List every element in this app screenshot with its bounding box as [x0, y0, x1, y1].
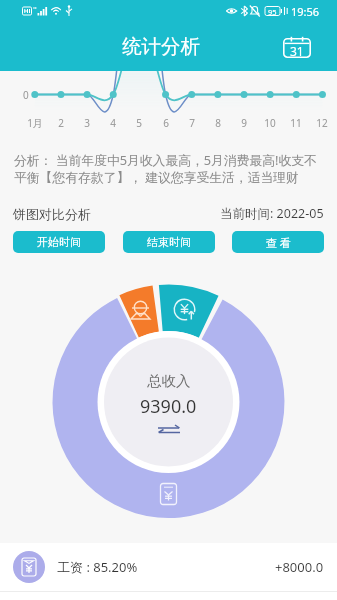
staticText: 12 — [310, 116, 334, 130]
staticText: 开始时间 — [37, 235, 81, 249]
staticText: 结束时间 — [147, 235, 191, 249]
staticText: 总收入 — [147, 372, 191, 390]
staticText: +8000.0 — [275, 558, 324, 576]
staticText: 95 — [268, 7, 277, 17]
button[interactable]: 结束时间 — [123, 231, 215, 253]
staticText: 5 — [127, 116, 151, 130]
staticText: 31 — [290, 43, 304, 59]
staticText: 1月 — [23, 116, 47, 130]
staticText: 工资 : 85.20% — [57, 558, 138, 576]
staticText: 0 — [23, 88, 29, 102]
staticText: 统计分析 — [122, 34, 200, 59]
staticText: 6 — [154, 116, 178, 130]
button[interactable]: 工资 : 85.20% — [0, 543, 337, 591]
staticText: 2 — [49, 116, 73, 130]
staticText: 当前时间: 2022-05 — [220, 205, 324, 222]
staticText: 3 — [75, 116, 99, 130]
staticText: 7 — [180, 116, 204, 130]
staticText: 查 看 — [266, 235, 291, 250]
staticText: 饼图对比分析 — [13, 206, 91, 222]
staticText: 4 — [101, 116, 125, 130]
staticText: 19:56 — [291, 4, 320, 19]
button[interactable]: 开始时间 — [13, 231, 105, 253]
staticText: 10 — [258, 116, 282, 130]
button[interactable]: Calendar — [279, 29, 315, 65]
button[interactable]: 查 看 — [232, 231, 324, 253]
staticText: 8 — [206, 116, 230, 130]
staticText: 分析： 当前年度中5月收入最高，5月消费最高!收支不平衡【您有存款了】， 建议您… — [14, 151, 323, 186]
staticText: 9390.0 — [140, 394, 197, 419]
staticText: 9 — [232, 116, 256, 130]
staticText: 11 — [284, 116, 308, 130]
